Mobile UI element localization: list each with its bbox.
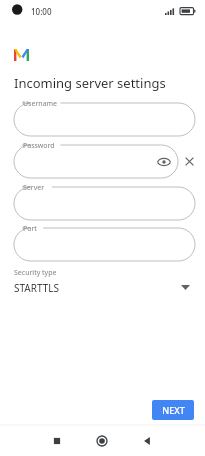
button[interactable]: Password [14, 145, 178, 178]
staticText: STARTTLS [14, 281, 60, 295]
staticText: 10:00 [31, 6, 52, 17]
button[interactable]: Security type [0, 266, 205, 302]
button[interactable]: Recent apps [52, 436, 62, 446]
button[interactable]: Show password [156, 154, 172, 170]
staticText: Server [23, 183, 45, 193]
staticText: Username [23, 99, 58, 109]
staticText: Security type [14, 268, 57, 278]
staticText: NEXT [162, 404, 185, 416]
staticText: Incoming server settings [14, 74, 166, 92]
button[interactable]: Back [141, 435, 153, 447]
button[interactable]: Clear password [181, 153, 198, 170]
button[interactable]: Port [14, 228, 195, 261]
button[interactable]: Home [96, 435, 108, 447]
staticText: Port [23, 224, 37, 234]
button[interactable]: Username [14, 103, 195, 136]
button[interactable]: NEXT [152, 400, 194, 420]
staticText: Password [23, 141, 55, 151]
button[interactable]: Server [14, 187, 195, 220]
